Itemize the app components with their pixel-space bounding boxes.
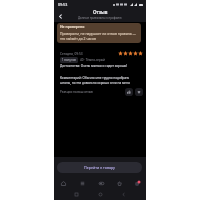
button[interactable]: Profile xyxy=(128,178,146,189)
staticText: Достоинства: Очень мягкая и сидит хорошо… xyxy=(60,64,128,68)
button[interactable]: Cart xyxy=(92,178,110,189)
staticText: Сегодня, 09:53 xyxy=(60,52,83,56)
staticText: 40 · Тёмно-серый xyxy=(80,58,105,62)
button[interactable]: 1 выкупов xyxy=(60,57,78,63)
staticText: 1 выкупов xyxy=(62,58,76,62)
staticText: Не проверено xyxy=(60,24,85,29)
button[interactable]: Не проверено xyxy=(57,23,141,43)
staticText: Данные привязаны к профилю xyxy=(78,16,122,20)
button[interactable]: Favorite xyxy=(135,88,143,96)
button[interactable]: Orders xyxy=(110,178,128,189)
staticText: Комментарий: Обычно мне трудно подобрать… xyxy=(60,76,130,85)
staticText: Проверяем, не нарушает ли отзыв правила … xyxy=(60,31,137,41)
button[interactable]: Back xyxy=(56,12,64,20)
staticText: Перейти к товару xyxy=(84,165,116,170)
button[interactable]: Catalog xyxy=(73,178,92,189)
button[interactable]: Home xyxy=(54,178,73,189)
staticText: Реакции на ваш отзыв xyxy=(60,90,93,94)
button[interactable]: Перейти к товару xyxy=(57,162,142,173)
staticText: 09:53 xyxy=(58,2,68,7)
staticText: Отзыв xyxy=(93,9,108,15)
button[interactable]: Like xyxy=(125,88,133,96)
